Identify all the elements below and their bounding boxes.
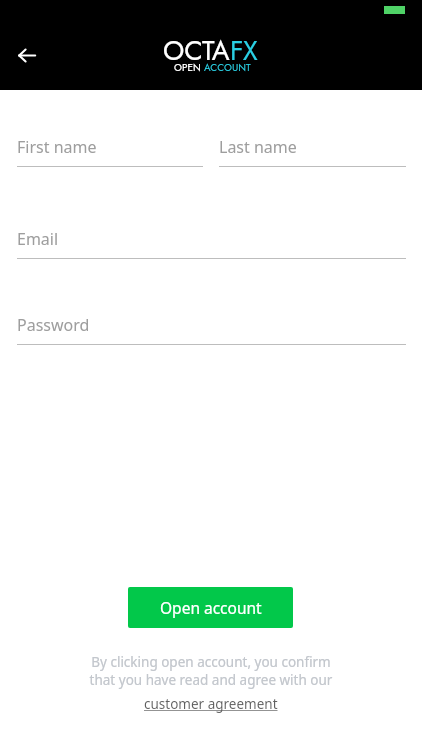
staticText: OPEN [174, 60, 204, 74]
staticText: Open account [160, 597, 262, 618]
button[interactable]: Open account [128, 587, 293, 628]
button[interactable]: customer agreement [144, 695, 278, 713]
staticText: First name [17, 136, 97, 158]
staticText: Email [17, 228, 59, 250]
staticText: customer agreement [144, 695, 278, 713]
staticText: OCTA [163, 31, 230, 70]
staticText: Password [17, 314, 90, 336]
button[interactable]: Back [5, 33, 49, 77]
staticText: Last name [219, 136, 297, 158]
staticText: By clicking open account, you confirm th… [0, 653, 422, 689]
button[interactable]: First name [17, 136, 203, 167]
button[interactable]: Password [17, 314, 406, 345]
button[interactable]: Email [17, 228, 406, 259]
staticText: FX [230, 31, 258, 70]
button[interactable]: Last name [219, 136, 406, 167]
staticText: ACCOUNT [204, 60, 251, 74]
